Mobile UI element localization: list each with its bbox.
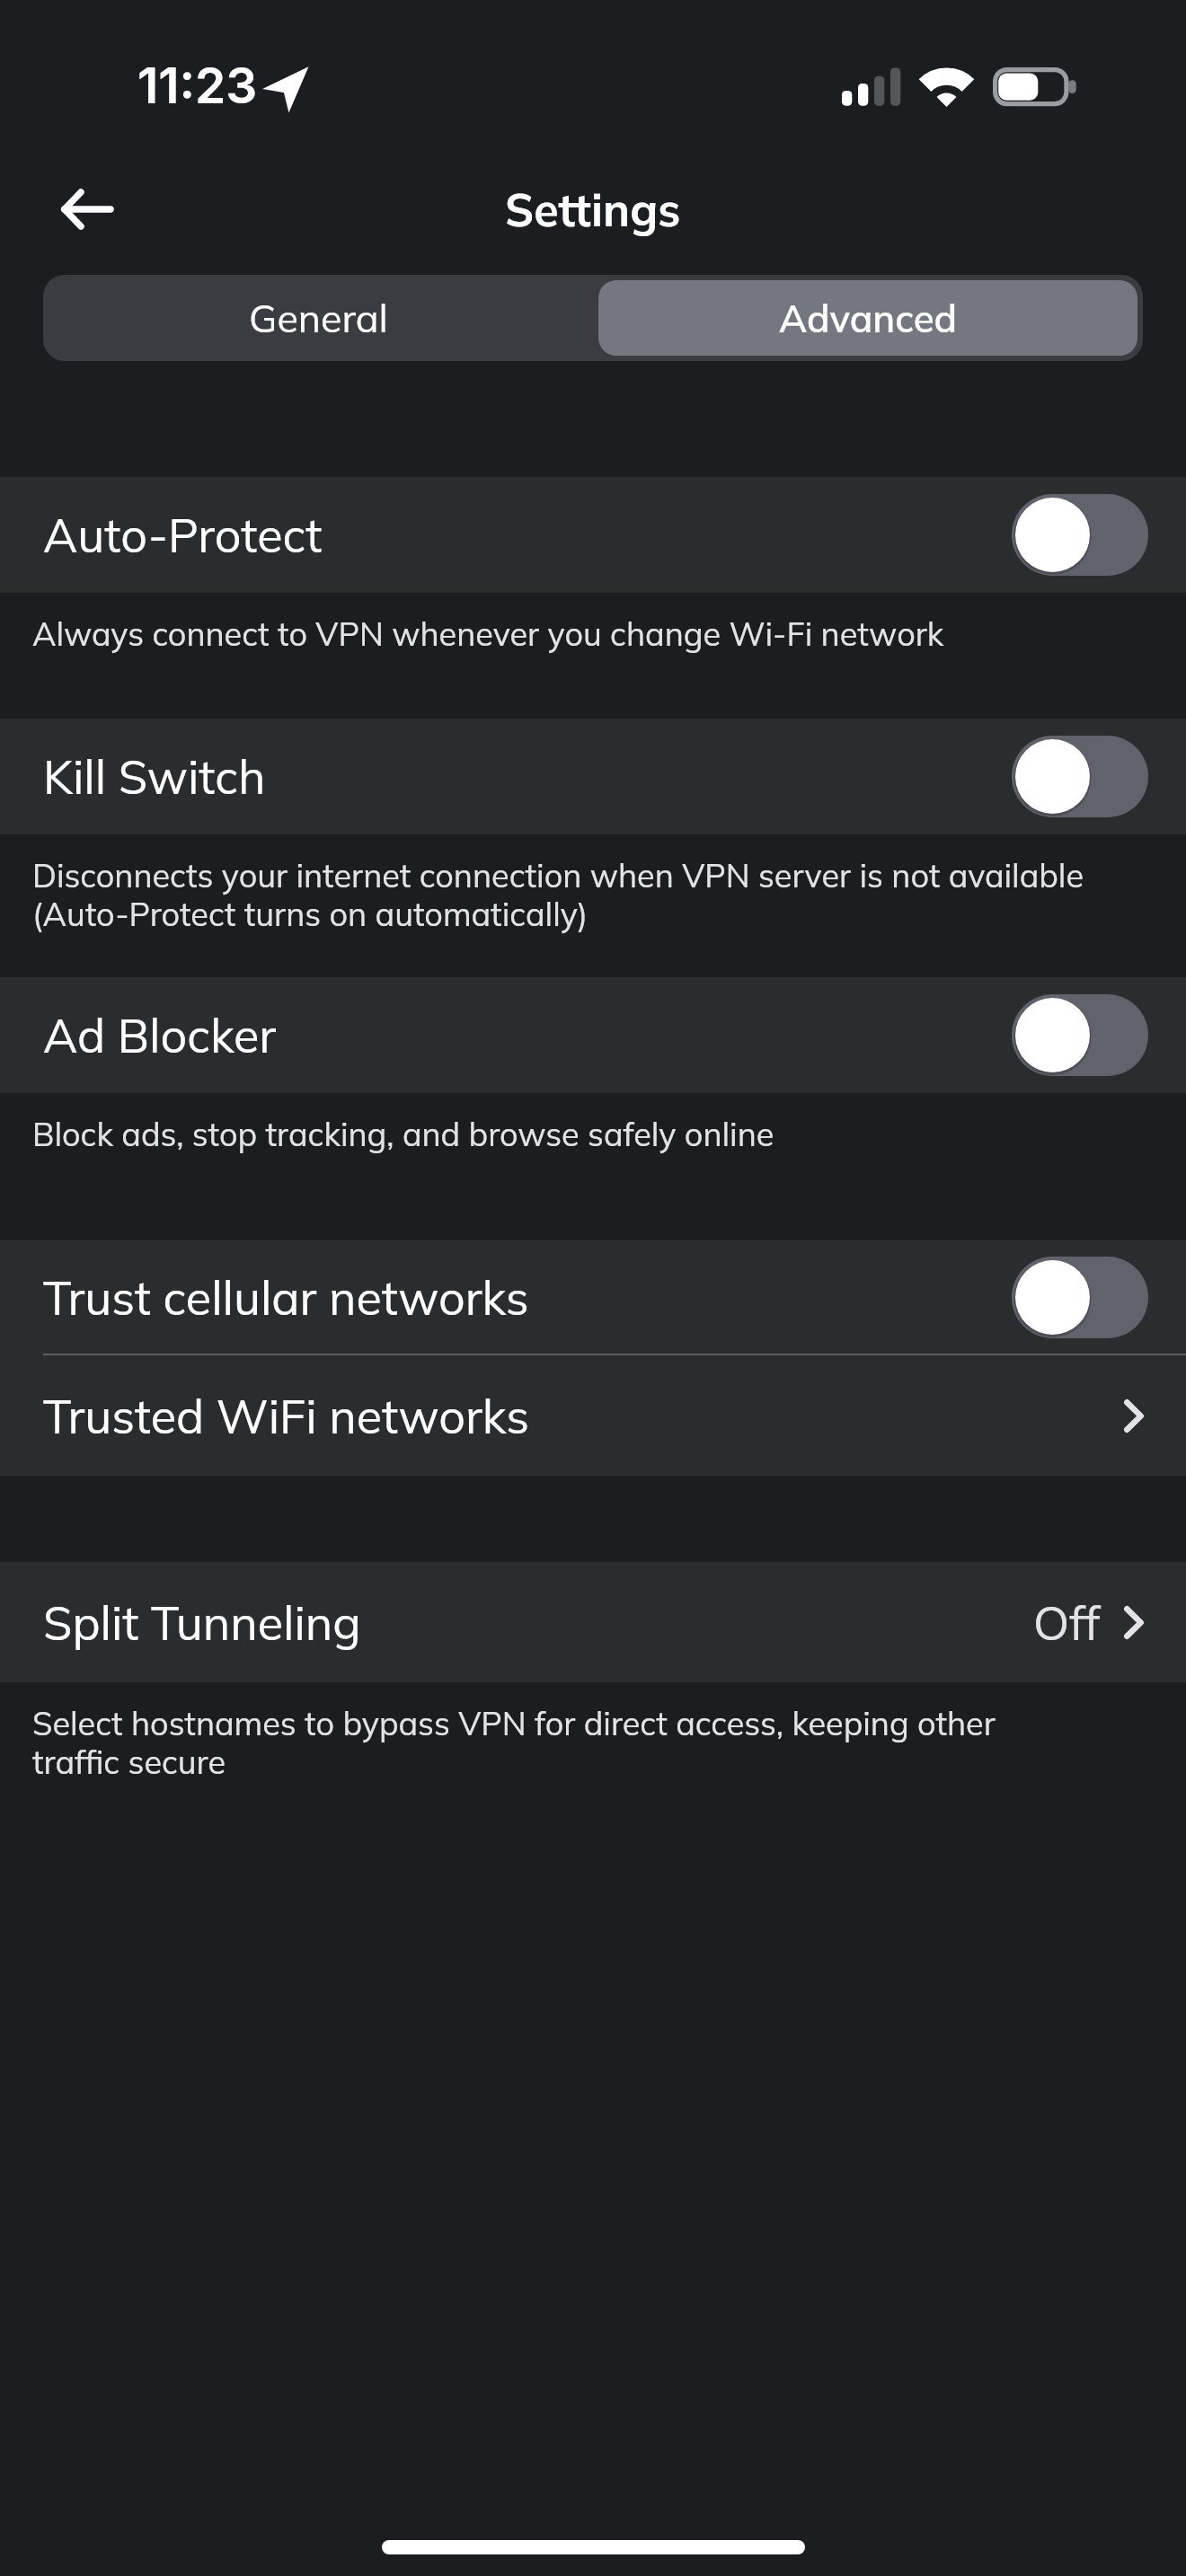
button[interactable]: Toggle: [1012, 994, 1148, 1076]
staticText: Block ads, stop tracking, and browse saf…: [32, 1114, 774, 1154]
staticText: Split Tunneling: [43, 1593, 361, 1652]
staticText: Off: [1033, 1593, 1101, 1652]
button[interactable]: General: [43, 275, 593, 361]
staticText: Kill Switch: [43, 747, 266, 806]
button[interactable]: Auto-Protect: [0, 477, 1186, 593]
button[interactable]: Kill Switch: [0, 719, 1186, 834]
button[interactable]: Toggle: [1012, 1257, 1148, 1338]
staticText: Ad Blocker: [43, 1006, 277, 1064]
button[interactable]: Toggle: [1012, 736, 1148, 817]
staticText: Settings: [505, 181, 681, 238]
button[interactable]: Toggle: [1012, 494, 1148, 576]
button[interactable]: Advanced: [598, 280, 1137, 356]
staticText: Always connect to VPN whenever you chang…: [32, 613, 944, 654]
staticText: General: [249, 294, 388, 342]
staticText: Select hostnames to bypass VPN for direc…: [32, 1703, 1042, 1782]
button[interactable]: Split Tunneling: [0, 1562, 1186, 1682]
button[interactable]: Trusted WiFi networks: [0, 1355, 1186, 1476]
button[interactable]: Back: [25, 144, 147, 275]
staticText: Advanced: [779, 295, 958, 342]
staticText: Auto-Protect: [43, 506, 323, 564]
staticText: Disconnects your internet connection whe…: [32, 855, 1109, 934]
staticText: 11:23: [137, 56, 258, 116]
button[interactable]: Trust cellular networks: [0, 1240, 1186, 1354]
staticText: Trust cellular networks: [43, 1268, 529, 1327]
button[interactable]: Ad Blocker: [0, 977, 1186, 1093]
staticText: Trusted WiFi networks: [43, 1387, 529, 1445]
